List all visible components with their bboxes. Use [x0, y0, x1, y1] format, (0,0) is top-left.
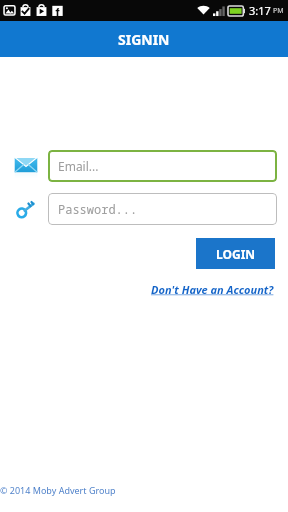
button[interactable]: Don't Have an Account?: [151, 282, 274, 297]
staticText: Don't Have an Account?: [151, 282, 274, 297]
staticText: Email...: [58, 158, 99, 174]
other: Password: [14, 197, 38, 221]
button[interactable]: Email...: [48, 150, 277, 182]
button[interactable]: LOGIN: [196, 238, 275, 269]
button[interactable]: Password...: [48, 193, 277, 225]
staticText: PM: [273, 6, 284, 16]
other: Email: [14, 154, 38, 178]
staticText: 3:17: [249, 3, 271, 18]
staticText: LOGIN: [216, 246, 256, 262]
staticText: Password...: [58, 201, 138, 217]
staticText: SIGNIN: [118, 30, 170, 49]
staticText: © 2014 Moby Advert Group: [0, 484, 288, 496]
